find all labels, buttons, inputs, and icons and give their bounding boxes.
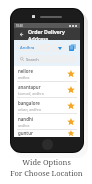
staticText: Search [26,57,39,62]
staticText: bangalore [18,100,40,106]
staticText: Order Delivery Address [28,28,77,40]
staticText: For Choose Location [10,168,83,178]
staticText: andhra [18,123,30,128]
staticText: anantapur [18,84,41,90]
button[interactable]: Favourite nellore [65,68,76,79]
button[interactable]: nellore [14,66,80,81]
staticText: guntur [18,130,33,136]
button[interactable]: Favourite nandhi [65,116,76,127]
button[interactable]: Search [17,55,77,63]
button[interactable]: anantapur [14,82,80,97]
button[interactable]: Favourite guntur [65,130,76,137]
button[interactable]: Back [17,30,25,38]
button[interactable]: Favourite anantapur [65,84,76,95]
button[interactable]: Favourite bangalore [65,100,76,111]
staticText: nellore [18,68,33,74]
button[interactable]: guntur [14,130,80,137]
staticText: Wide Options [22,157,71,167]
button[interactable]: Saved addresses [68,43,77,52]
button[interactable]: Andhra [17,44,65,52]
button[interactable]: nandhi [14,114,80,129]
staticText: 10:30 [16,24,23,28]
staticText: andhra [18,75,30,80]
staticText: nandhi [18,116,33,122]
staticText: Andhra [20,45,58,51]
staticText: urban, andhra [18,107,41,112]
button[interactable]: bangalore [14,98,80,113]
staticText: kurnool, andhra [18,91,44,96]
